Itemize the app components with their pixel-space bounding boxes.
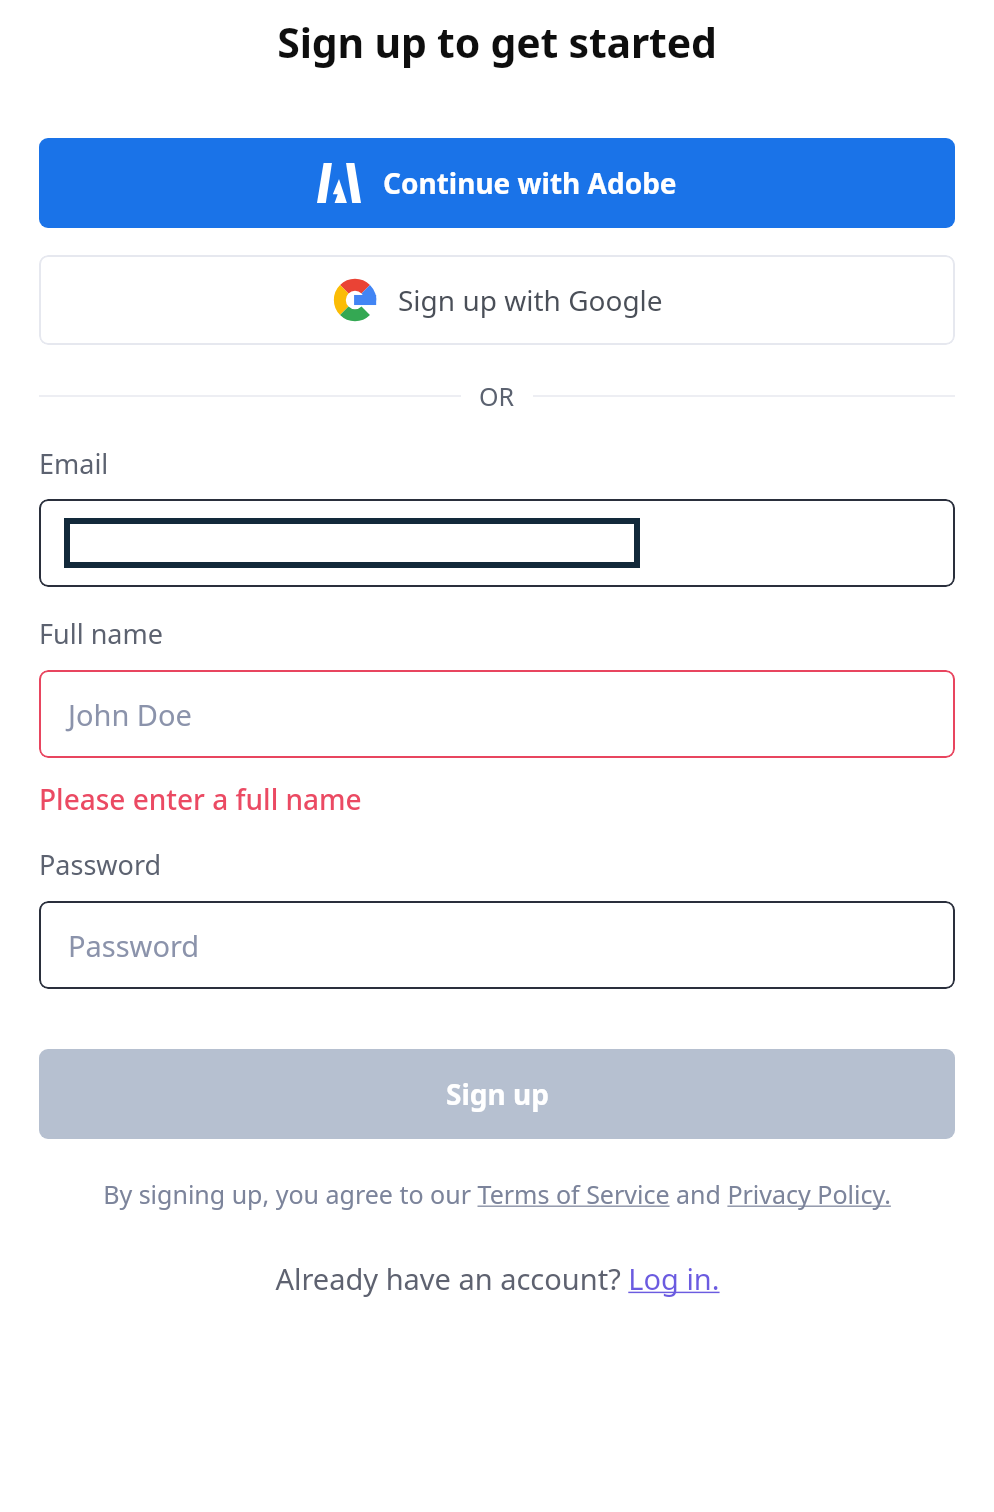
staticText: OR (479, 379, 515, 413)
staticText: Sign up to get started (39, 14, 955, 70)
staticText: Sign up (446, 1075, 549, 1113)
staticText: Password (68, 926, 200, 965)
button[interactable]: John Doe (39, 670, 955, 758)
staticText: Sign up with Google (398, 281, 663, 319)
staticText: Email (39, 445, 109, 482)
button[interactable] (39, 499, 955, 587)
button[interactable]: Sign up (39, 1049, 955, 1139)
other: Adobe (317, 163, 361, 203)
button[interactable]: By signing up, you agree to our Terms of… (39, 1177, 955, 1211)
staticText: Please enter a full name (39, 780, 362, 818)
button[interactable]: Password (39, 901, 955, 989)
staticText: John Doe (68, 695, 192, 734)
staticText: Continue with Adobe (383, 164, 677, 202)
staticText: Full name (39, 615, 163, 652)
button[interactable]: Google (39, 255, 955, 345)
other: Google (332, 277, 378, 323)
staticText: Password (39, 846, 162, 883)
button[interactable]: Adobe (39, 138, 955, 228)
staticText: Already have an account? Log in. (275, 1259, 720, 1298)
button[interactable]: Already have an account? Log in. (39, 1259, 955, 1298)
